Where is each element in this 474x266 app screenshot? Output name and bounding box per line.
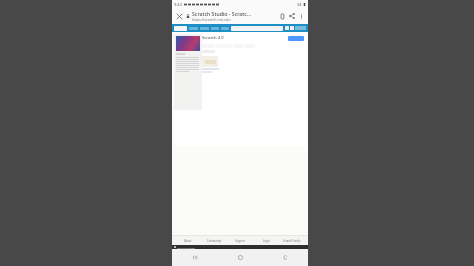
button[interactable]: Share <box>287 11 297 21</box>
button[interactable]: Account icon <box>285 26 289 30</box>
staticText: Support <box>235 239 245 243</box>
staticText: 34 <box>297 2 302 7</box>
staticText: 9:43 <box>174 2 182 7</box>
staticText: Scratch Family <box>283 239 301 243</box>
button[interactable]: Home <box>218 249 263 266</box>
button[interactable]: Recent apps <box>172 249 218 266</box>
staticText: Select language <box>177 246 195 249</box>
button[interactable]: Back <box>263 249 308 266</box>
button[interactable]: Account icon <box>290 26 294 30</box>
button[interactable]: Community <box>201 239 227 243</box>
staticText: Community <box>207 239 222 243</box>
button[interactable]: Close <box>175 12 184 21</box>
staticText: Legal <box>263 239 270 243</box>
button[interactable]: Scratch Studio - Scratc... <box>192 10 276 22</box>
button[interactable]: About <box>175 239 201 243</box>
button[interactable]: Open in browser <box>277 11 287 21</box>
staticText: Scratch 4.0 <box>202 35 224 41</box>
staticText: Scratch Studio - Scratc... <box>192 10 252 17</box>
button[interactable]: More options <box>297 12 305 20</box>
button[interactable]: Search <box>231 26 283 31</box>
button[interactable]: Support <box>227 239 253 243</box>
button[interactable]: Follow studio <box>288 36 304 41</box>
button[interactable]: Scratch Family <box>279 239 305 243</box>
button[interactable] <box>202 56 219 73</box>
button[interactable]: Legal <box>253 239 279 243</box>
staticText: About <box>184 239 192 243</box>
button[interactable]: Scratch home <box>174 26 187 31</box>
staticText: https://scratch.mit.edu <box>192 17 231 22</box>
